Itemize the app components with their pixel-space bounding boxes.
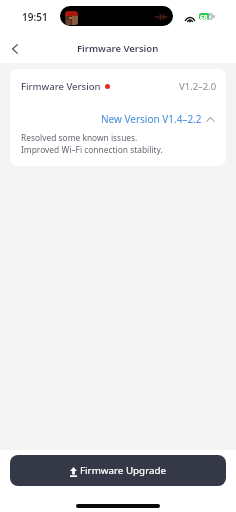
staticText: Firmware Version xyxy=(21,80,101,93)
button[interactable]: Firmware Upgrade xyxy=(10,455,226,486)
staticText: Firmware Upgrade xyxy=(80,464,167,477)
button[interactable]: Back xyxy=(0,34,30,64)
staticText: 68 xyxy=(200,13,208,20)
staticText: 19:51 xyxy=(22,10,48,24)
staticText: Firmware Version xyxy=(77,42,159,55)
staticText: V1.2–2.0 xyxy=(179,80,217,93)
staticText: Improved Wi–Fi connection stability. xyxy=(21,144,163,155)
button[interactable]: New Version V1.4–2.2 xyxy=(21,112,217,126)
staticText: Resolved some known issues. xyxy=(21,132,138,143)
staticText: New Version V1.4–2.2 xyxy=(101,112,202,126)
